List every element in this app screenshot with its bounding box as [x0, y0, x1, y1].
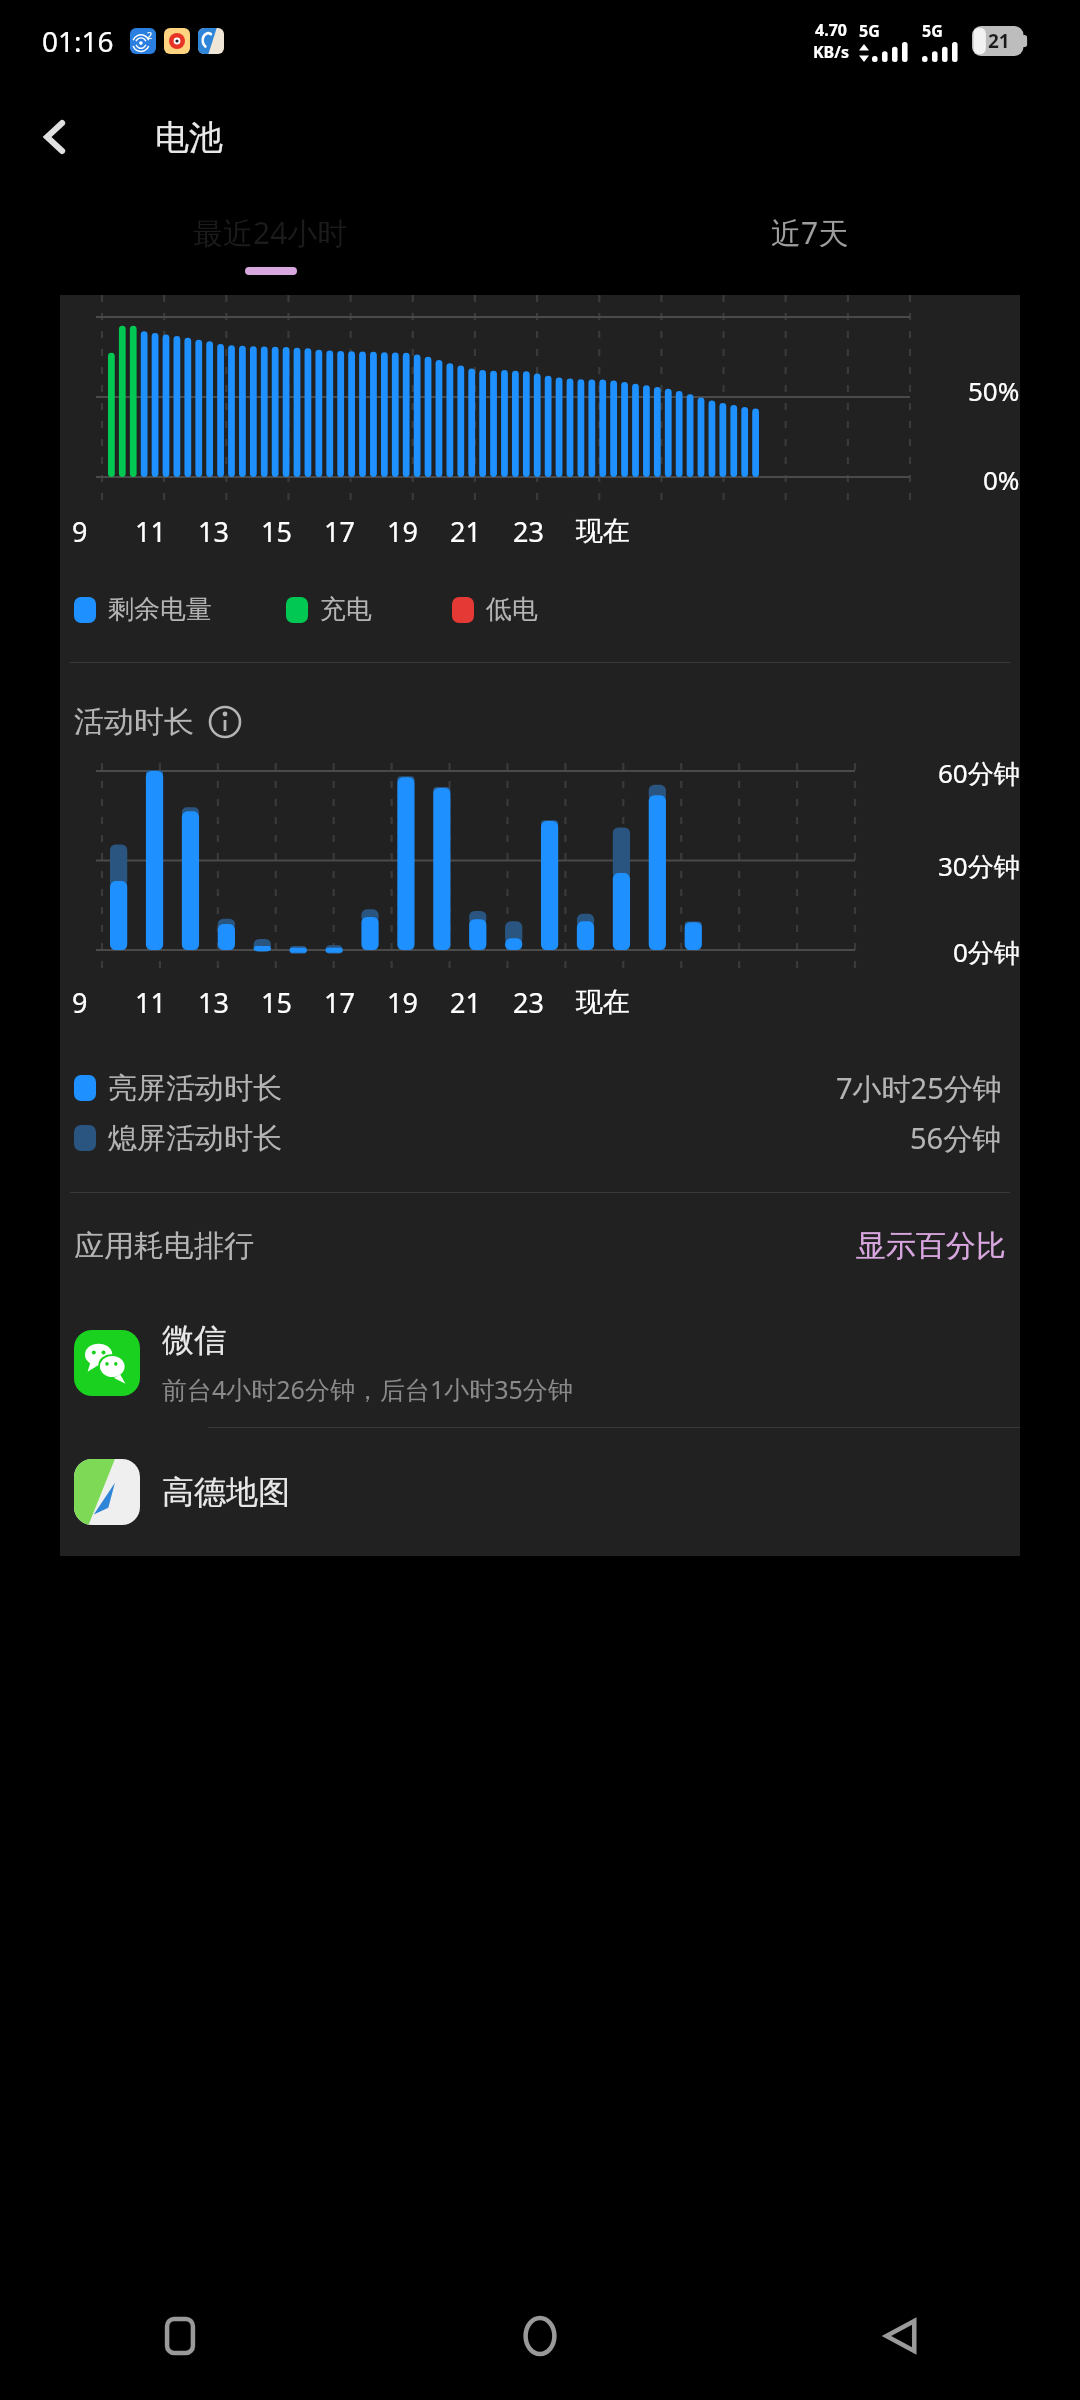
- staticText: 30分钟: [938, 848, 1020, 884]
- staticText: 17: [324, 513, 355, 550]
- staticText: 应用耗电排行: [74, 1227, 254, 1265]
- button[interactable]: Recent apps: [0, 2272, 360, 2400]
- staticText: 亮屏活动时长: [108, 1070, 282, 1107]
- staticText: 5G: [859, 20, 880, 42]
- staticText: 11: [135, 513, 166, 550]
- button[interactable]: 高德地图: [60, 1428, 1020, 1556]
- staticText: 13: [198, 513, 229, 550]
- button[interactable]: 近7天: [540, 192, 1080, 295]
- staticText: 电池: [155, 116, 223, 159]
- staticText: 21: [988, 28, 1010, 54]
- staticText: 01:16: [42, 22, 114, 60]
- staticText: 56分钟: [910, 1118, 1002, 1158]
- button[interactable]: Back: [28, 109, 84, 165]
- staticText: 5G: [922, 20, 943, 42]
- staticText: 2: [147, 29, 153, 41]
- staticText: 21: [450, 984, 481, 1021]
- staticText: 15: [261, 513, 292, 550]
- button[interactable]: 显示百分比: [856, 1227, 1006, 1265]
- staticText: 最近24小时: [193, 212, 348, 253]
- staticText: 60分钟: [938, 755, 1020, 791]
- staticText: 活动时长: [74, 703, 194, 741]
- staticText: 21: [450, 513, 481, 550]
- staticText: 剩余电量: [108, 593, 212, 626]
- staticText: 微信: [162, 1320, 226, 1360]
- staticText: 19: [387, 513, 418, 550]
- staticText: 现在: [576, 514, 630, 548]
- staticText: 熄屏活动时长: [108, 1120, 282, 1157]
- staticText: 近7天: [771, 212, 849, 253]
- staticText: 现在: [576, 985, 630, 1019]
- staticText: 9: [72, 513, 88, 550]
- staticText: 23: [513, 984, 544, 1021]
- button[interactable]: Back: [720, 2272, 1080, 2400]
- staticText: 0分钟: [953, 934, 1020, 970]
- staticText: 17: [324, 984, 355, 1021]
- staticText: 0%: [983, 462, 1020, 497]
- staticText: 显示百分比: [856, 1227, 1006, 1265]
- staticText: 19: [387, 984, 418, 1021]
- staticText: 高德地图: [162, 1472, 290, 1512]
- button[interactable]: 微信: [60, 1299, 1020, 1427]
- staticText: 前台4小时26分钟，后台1小时35分钟: [162, 1372, 573, 1406]
- staticText: 11: [135, 984, 166, 1021]
- staticText: 7小时25分钟: [836, 1068, 1002, 1108]
- staticText: 9: [72, 984, 88, 1021]
- button[interactable]: Info: [208, 705, 242, 739]
- staticText: 充电: [320, 593, 372, 626]
- staticText: 23: [513, 513, 544, 550]
- staticText: 13: [198, 984, 229, 1021]
- staticText: 50%: [968, 373, 1020, 408]
- staticText: 低电: [486, 593, 538, 626]
- staticText: KB/s: [813, 41, 849, 63]
- staticText: 4.70: [815, 19, 847, 41]
- button[interactable]: 最近24小时: [0, 192, 540, 295]
- button[interactable]: Home: [360, 2272, 720, 2400]
- staticText: 15: [261, 984, 292, 1021]
